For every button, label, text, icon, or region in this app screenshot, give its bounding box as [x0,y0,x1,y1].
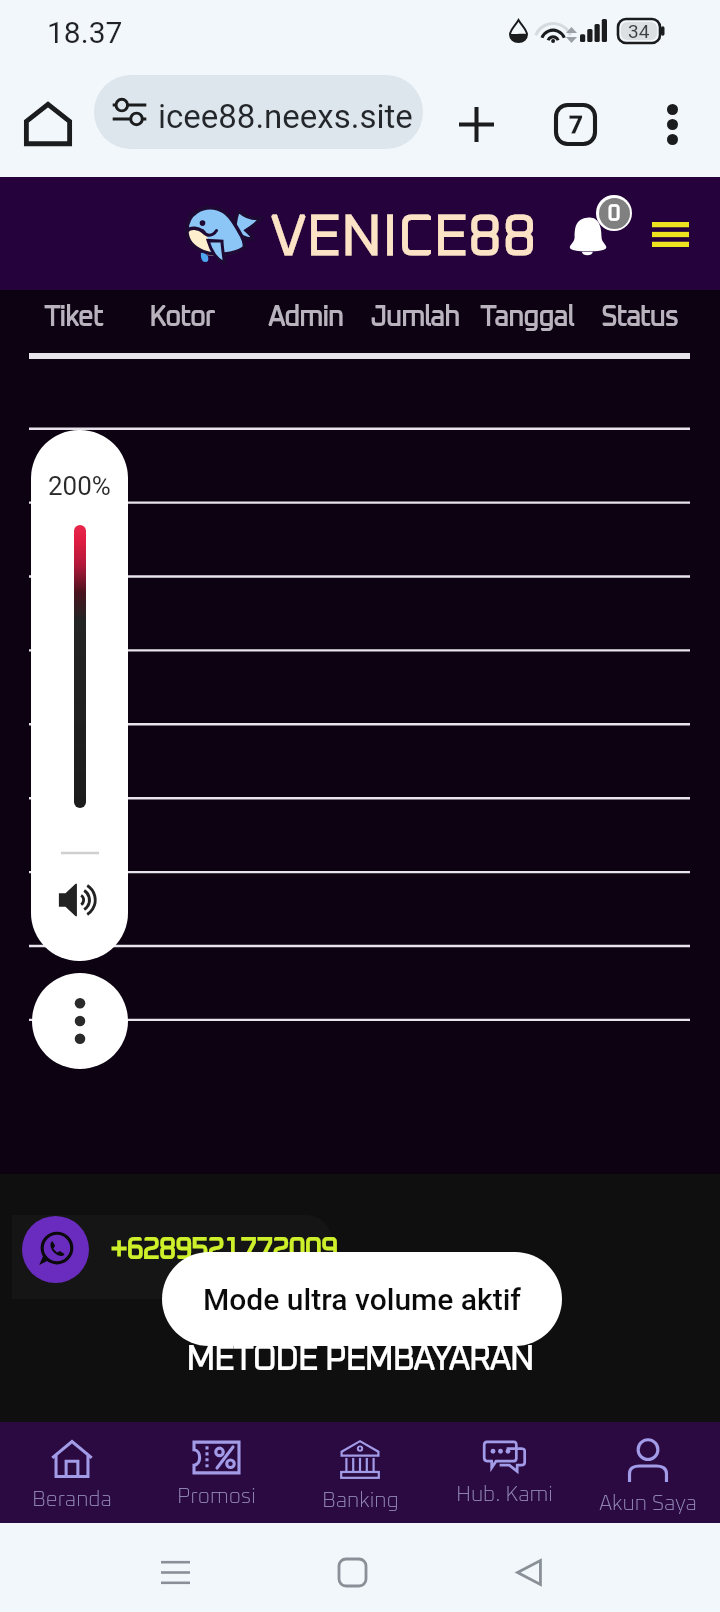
button[interactable]: Mode ultra volume aktif [162,1252,562,1346]
button[interactable]: Tabs [539,88,611,160]
staticText: 0 [608,203,621,224]
staticText: METODE PEMBAYARAN [187,1343,534,1376]
button[interactable]: Akun Saya [576,1422,720,1523]
staticText: Promosi [177,1486,256,1507]
staticText: VENICE88 [272,211,538,266]
staticText: 18.37 [47,15,123,50]
button[interactable]: icee88.neexs.site [94,75,423,149]
button[interactable]: WhatsApp [22,1216,89,1283]
staticText: Hub. Kami [456,1484,553,1505]
staticText: Akun Saya [599,1493,697,1514]
staticText: 34 [628,20,650,42]
staticText: Tanggal [481,304,575,330]
staticText: Status [602,304,679,330]
staticText: Beranda [32,1489,112,1510]
staticText: Tiket [45,304,104,330]
staticText: icee88.neexs.site [158,97,413,136]
staticText: 7 [569,111,583,139]
button[interactable]: Recent apps [139,1536,211,1608]
staticText: Kotor [150,304,215,330]
button[interactable]: Hub. Kami [432,1422,576,1523]
staticText: Banking [322,1490,399,1511]
button[interactable]: Home [316,1536,388,1608]
button[interactable]: Beranda [0,1422,144,1523]
staticText: Status [602,304,679,330]
staticText: Tiket [45,304,104,330]
button[interactable]: More options [636,88,708,160]
staticText: Kotor [150,304,215,330]
staticText: VENICE88 [272,211,538,266]
staticText: 200% [48,471,111,501]
staticText: Admin [269,304,344,330]
button[interactable]: Volume level [74,525,86,808]
staticText: +6289521772009 [111,1236,338,1264]
staticText: Mode ultra volume aktif [203,1282,521,1317]
staticText: 0 [608,203,621,224]
button[interactable]: Banking [288,1422,432,1523]
button[interactable]: Notifications [557,197,623,263]
staticText: Admin [269,304,344,330]
staticText: Tanggal [481,304,575,330]
button[interactable]: Back [493,1536,565,1608]
staticText: Jumlah [371,304,460,330]
button[interactable]: Promosi [144,1422,288,1523]
staticText: Jumlah [371,304,460,330]
button[interactable]: Home [12,88,84,160]
button[interactable]: More options [32,973,128,1069]
staticText: METODE PEMBAYARAN [187,1343,534,1376]
button[interactable]: Mute [48,873,112,927]
button[interactable]: New tab [440,88,512,160]
button[interactable]: Menu [638,207,702,261]
staticText: +6289521772009 [111,1236,338,1264]
